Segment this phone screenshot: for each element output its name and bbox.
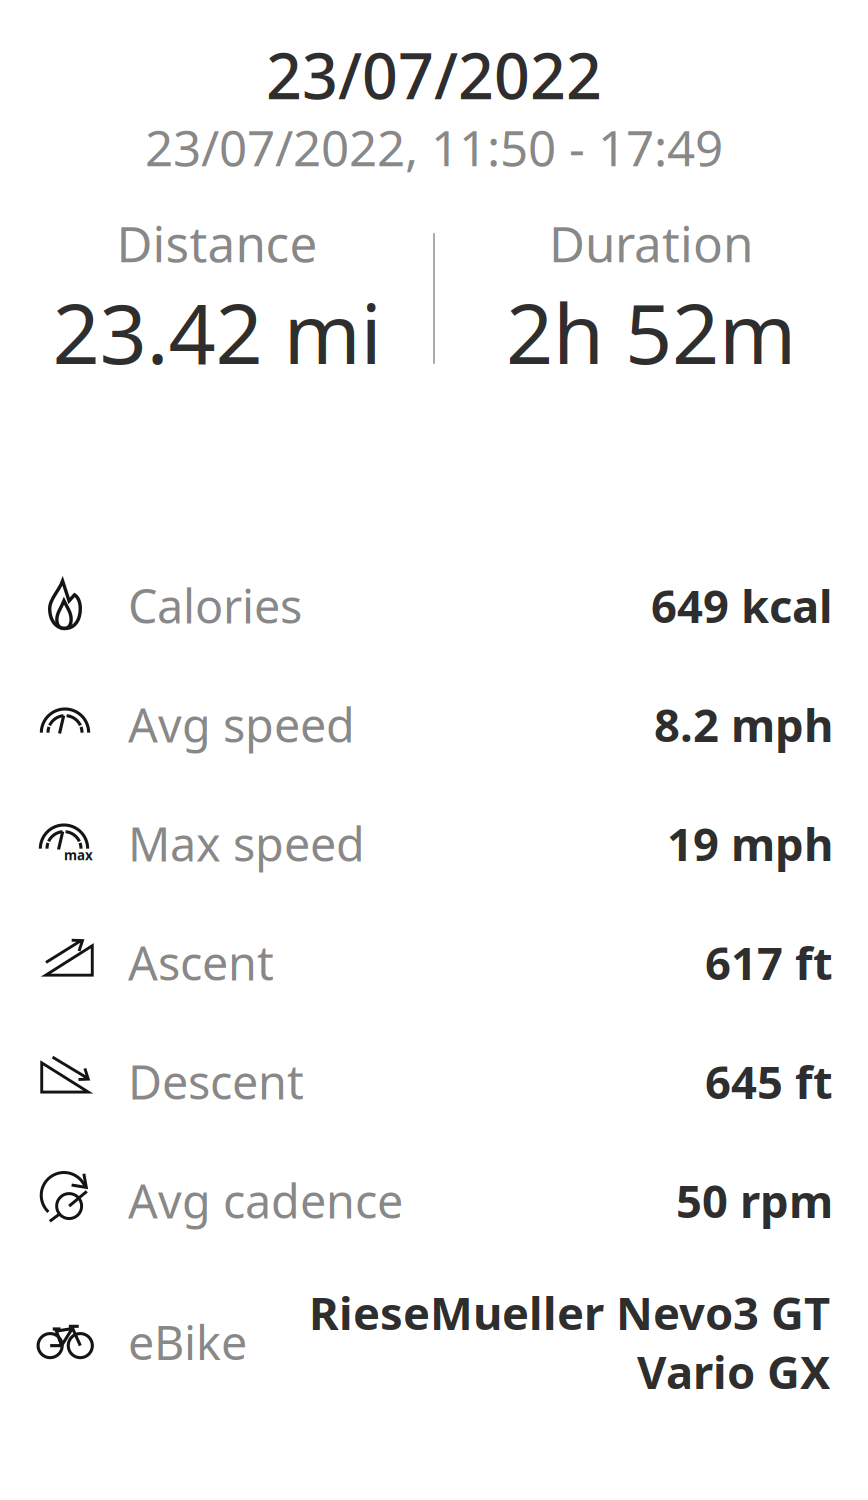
staticText: max	[64, 846, 93, 864]
staticText: RieseMueller Nevo3 GT	[309, 1282, 830, 1343]
button[interactable]: eBike	[0, 1260, 868, 1406]
staticText: Avg cadence	[128, 1169, 403, 1231]
staticText: 50 rpm	[676, 1170, 833, 1231]
staticText: 8.2 mph	[654, 694, 833, 755]
button[interactable]: Ascent	[0, 903, 868, 1022]
button[interactable]: Descent	[0, 1022, 868, 1141]
staticText: Max speed	[128, 812, 365, 874]
staticText: eBike	[128, 1311, 247, 1373]
staticText: 649 kcal	[651, 575, 833, 636]
staticText: Avg speed	[128, 693, 355, 755]
staticText: Duration	[549, 210, 753, 276]
staticText: Calories	[128, 574, 302, 636]
staticText: 19 mph	[667, 813, 833, 874]
staticText: 645 ft	[705, 1051, 833, 1112]
button[interactable]: max	[0, 784, 868, 903]
staticText: 23/07/2022	[266, 33, 602, 117]
button[interactable]: Avg speed	[0, 665, 868, 784]
staticText: 617 ft	[705, 932, 833, 993]
staticText: 23.42 mi	[52, 277, 381, 387]
staticText: 23/07/2022, 11:50 - 17:49	[145, 114, 723, 180]
staticText: Distance	[116, 210, 317, 276]
button[interactable]: Calories	[0, 546, 868, 665]
button[interactable]: Avg cadence	[0, 1141, 868, 1260]
staticText: Ascent	[128, 931, 274, 993]
staticText: Descent	[128, 1050, 304, 1112]
staticText: 2h 52m	[506, 277, 796, 387]
staticText: Vario GX	[637, 1341, 830, 1402]
